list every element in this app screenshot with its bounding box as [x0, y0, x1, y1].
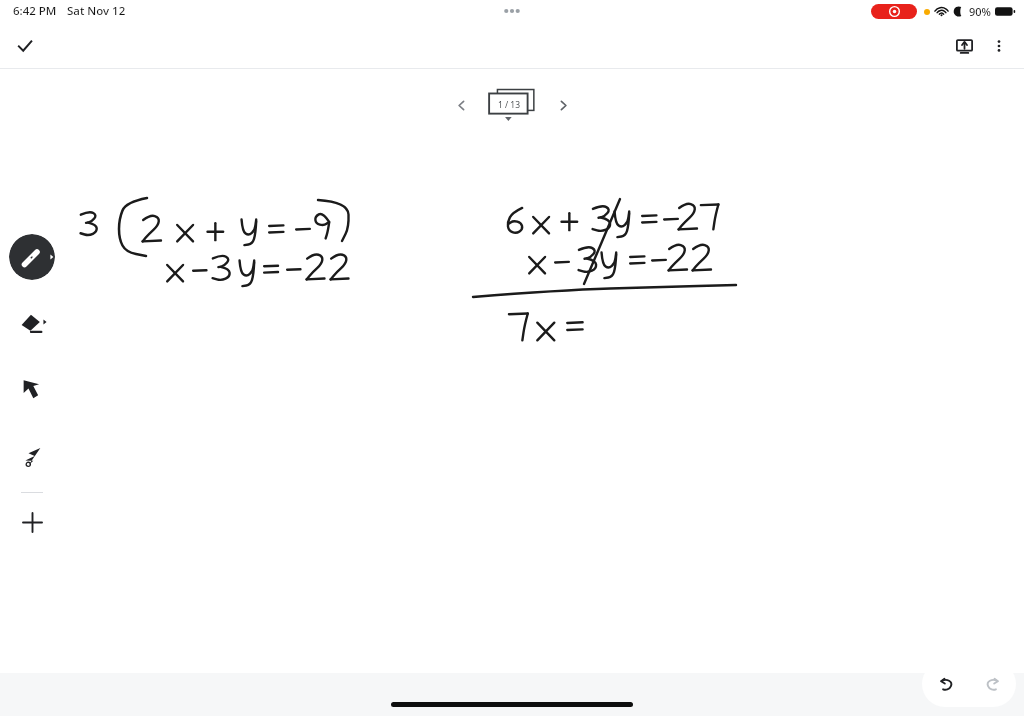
staticText: 90% — [969, 4, 991, 19]
button[interactable]: Redo — [974, 666, 1010, 702]
button[interactable]: More options — [982, 29, 1016, 63]
button[interactable]: Add tool — [10, 507, 54, 538]
button[interactable]: Eraser — [10, 300, 54, 344]
staticText: Sat Nov 12 — [67, 3, 126, 19]
button[interactable]: Undo — [928, 666, 964, 702]
button[interactable]: Select — [10, 367, 54, 411]
button[interactable]: Done — [9, 30, 41, 62]
button[interactable]: Page 1 of 13 — [486, 87, 538, 123]
button[interactable]: Previous page — [445, 89, 477, 121]
button[interactable]: Present to meeting — [946, 28, 982, 64]
button[interactable]: Next page — [547, 89, 579, 121]
button[interactable]: Laser pointer — [10, 434, 54, 478]
button[interactable]: Pen — [9, 234, 55, 280]
staticText: 1 / 13 — [493, 99, 525, 111]
staticText: 6:42 PM — [13, 3, 57, 19]
